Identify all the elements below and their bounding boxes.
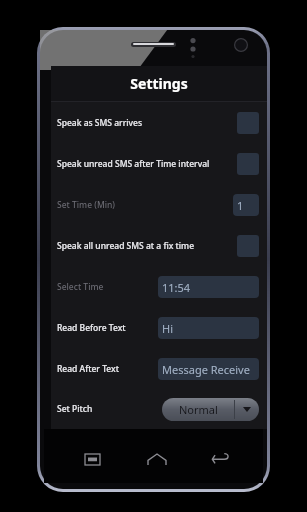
- button[interactable]: Read After Text: [51, 348, 267, 389]
- button[interactable]: Toggle Speak unread SMS after Time inter…: [237, 153, 259, 175]
- button[interactable]: Speak unread SMS after Time interval: [51, 143, 267, 184]
- button[interactable]: Hi: [158, 317, 259, 339]
- staticText: Settings: [130, 74, 188, 93]
- staticText: Set Time (Min): [57, 199, 233, 211]
- staticText: Read Before Text: [57, 322, 158, 334]
- button[interactable]: Set Pitch: [51, 389, 267, 429]
- button[interactable]: Back: [204, 446, 236, 472]
- button[interactable]: Message Receive: [158, 358, 259, 380]
- button[interactable]: Set Time (Min): [51, 184, 267, 225]
- staticText: 11:54: [162, 280, 191, 295]
- staticText: Message Receive: [162, 362, 250, 377]
- staticText: Speak unread SMS after Time interval: [57, 158, 237, 170]
- button[interactable]: 11:54: [158, 276, 259, 298]
- staticText: Hi: [162, 321, 173, 336]
- button[interactable]: Select Time: [51, 266, 267, 307]
- button[interactable]: 1: [233, 194, 259, 216]
- button[interactable]: Toggle Speak as SMS arrives: [237, 112, 259, 134]
- staticText: Speak as SMS arrives: [57, 117, 237, 129]
- staticText: 1: [237, 198, 244, 213]
- button[interactable]: Normal: [162, 398, 259, 421]
- staticText: Normal: [179, 402, 218, 417]
- button[interactable]: Read Before Text: [51, 307, 267, 348]
- button[interactable]: Recent apps: [76, 446, 108, 472]
- button[interactable]: Speak all unread SMS at a fix time: [51, 225, 267, 266]
- button[interactable]: Toggle Speak all unread SMS at a fix tim…: [237, 235, 259, 257]
- staticText: Select Time: [57, 281, 158, 293]
- staticText: Set Pitch: [57, 403, 162, 415]
- staticText: Speak all unread SMS at a fix time: [57, 240, 237, 252]
- button[interactable]: Home: [141, 446, 173, 472]
- staticText: Read After Text: [57, 363, 158, 375]
- button[interactable]: Speak as SMS arrives: [51, 102, 267, 143]
